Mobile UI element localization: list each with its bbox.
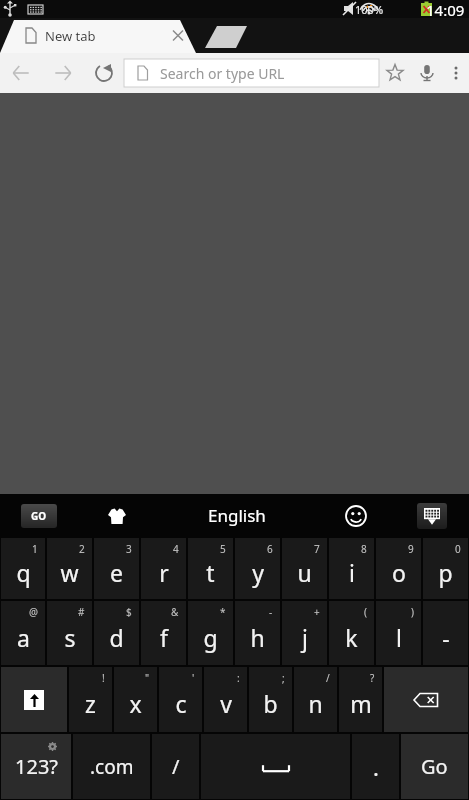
staticText: y [252,557,264,588]
staticText: m [350,688,372,719]
button[interactable]: Shift [1,667,67,732]
button[interactable]: Space [201,734,350,799]
staticText: : [237,671,240,685]
staticText: New tab [45,27,96,45]
button[interactable]: ; [249,667,292,732]
button[interactable]: Hide keyboard [395,494,469,537]
button[interactable]: Forward [42,53,84,93]
button[interactable]: : [204,667,247,732]
staticText: b [263,688,278,719]
button[interactable]: / [294,667,337,732]
staticText: 4 [173,542,179,556]
staticText: . [373,752,379,782]
staticText: 7 [314,542,320,556]
button[interactable]: 5 [188,538,233,599]
button[interactable]: Backspace [384,667,468,732]
staticText: q [16,557,31,588]
staticText: " [145,671,150,685]
staticText: h [250,622,265,653]
button[interactable]: Themes [78,494,156,537]
staticText: g [203,622,218,653]
button[interactable]: Bookmark [379,53,411,93]
button[interactable]: 9 [376,538,421,599]
button[interactable]: 3 [94,538,139,599]
button[interactable]: Search or type URL [124,59,379,87]
button[interactable]: # [47,601,92,665]
button[interactable]: - [423,601,468,665]
button[interactable]: 4 [141,538,186,599]
button[interactable]: 6 [235,538,280,599]
button[interactable]: More options [443,53,469,93]
button[interactable]: . [352,734,399,799]
button[interactable]: ( [329,601,374,665]
staticText: p [438,557,453,588]
button[interactable]: * [188,601,233,665]
staticText: 3 [126,542,132,556]
staticText: 100% [355,2,384,17]
staticText: d [109,622,124,653]
button[interactable]: 8 [329,538,374,599]
staticText: / [172,753,180,780]
staticText: $ [126,605,132,619]
button[interactable]: ' [159,667,202,732]
button[interactable]: ! [69,667,112,732]
button[interactable]: 123? [1,734,71,799]
button[interactable]: & [141,601,186,665]
button[interactable]: Go [401,734,468,799]
button[interactable]: 7 [282,538,327,599]
staticText: c [175,688,187,719]
button[interactable]: $ [94,601,139,665]
staticText: - [442,622,450,653]
button[interactable]: 1 [1,538,45,599]
button[interactable]: Go shortcut [0,494,78,537]
button[interactable]: Reload [84,53,124,93]
staticText: ) [411,605,414,619]
staticText: u [297,557,312,588]
staticText: Search or type URL [160,64,285,83]
staticText: ' [192,671,195,685]
staticText: ( [364,605,367,619]
button[interactable]: @ [1,601,45,665]
button[interactable]: English [156,494,317,537]
button[interactable]: Voice search [411,53,443,93]
staticText: e [110,557,123,588]
button[interactable]: / [152,734,199,799]
staticText: 8 [361,542,367,556]
staticText: 5 [220,542,226,556]
staticText: + [314,605,320,619]
staticText: j [302,622,308,653]
button[interactable]: Close tab [168,25,190,47]
staticText: o [392,557,406,588]
button[interactable]: 2 [47,538,92,599]
staticText: 0 [455,542,461,556]
staticText: f [160,622,168,653]
button[interactable]: " [114,667,157,732]
button[interactable]: ? [339,667,382,732]
staticText: ? [370,671,375,685]
button[interactable]: - [235,601,280,665]
button[interactable]: Emoji [317,494,395,537]
staticText: i [349,557,355,588]
button[interactable]: New tab [205,18,249,53]
staticText: k [345,622,358,653]
button[interactable]: Back [0,53,42,93]
staticText: - [269,605,273,619]
staticText: 14:09 [426,0,465,18]
staticText: x [129,688,142,719]
staticText: t [206,557,215,588]
button[interactable]: New tab [45,27,96,45]
button[interactable]: ) [376,601,421,665]
staticText: / [326,671,330,685]
button[interactable]: .com [73,734,150,799]
staticText: & [171,605,179,619]
staticText: 2 [79,542,85,556]
staticText: l [396,622,402,653]
button[interactable]: 0 [423,538,468,599]
staticText: s [64,622,76,653]
staticText: @ [29,605,38,619]
button[interactable]: + [282,601,327,665]
staticText: 6 [267,542,273,556]
staticText: a [17,622,30,653]
staticText: w [60,557,79,588]
staticText: ! [102,671,105,685]
